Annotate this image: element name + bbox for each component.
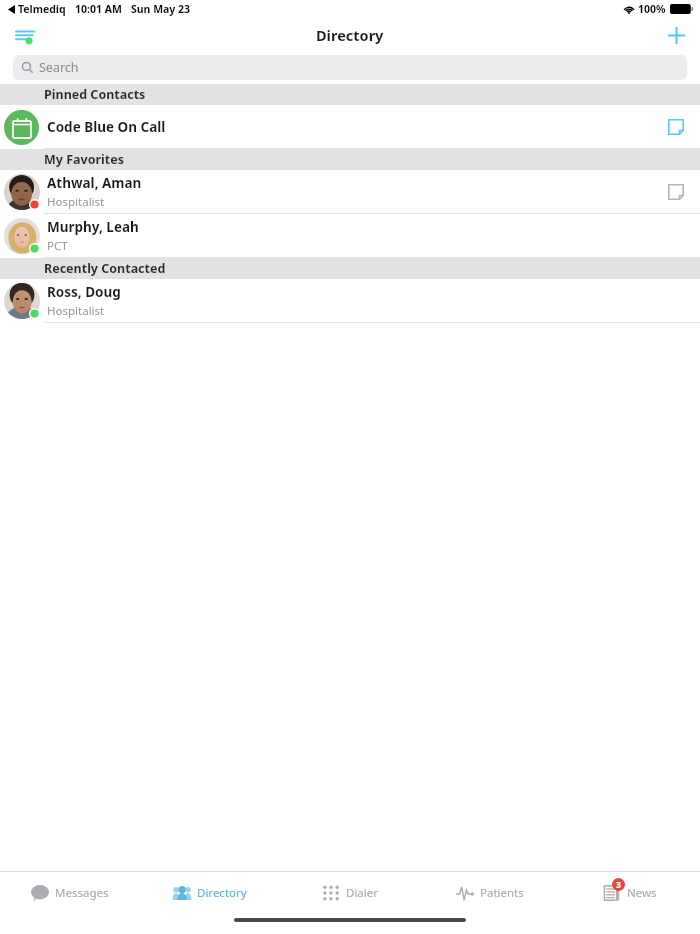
staticText: News xyxy=(627,885,657,901)
button[interactable]: Dialer xyxy=(280,872,420,914)
staticText: Murphy, Leah xyxy=(47,218,139,236)
staticText: 100% xyxy=(638,2,666,16)
button[interactable]: Add xyxy=(661,20,691,50)
staticText: Ross, Doug xyxy=(47,283,121,301)
button[interactable]: Directory xyxy=(140,872,280,914)
button[interactable]: Code Blue On Call xyxy=(0,105,700,149)
staticText: PCT xyxy=(47,238,68,254)
staticText: Recently Contacted xyxy=(44,260,166,277)
button[interactable]: Ross, Doug xyxy=(0,279,700,323)
staticText: Directory xyxy=(316,25,384,45)
staticText: Telmediq xyxy=(18,2,66,16)
staticText: Code Blue On Call xyxy=(47,118,166,136)
button[interactable]: Notes xyxy=(662,178,690,206)
staticText: Pinned Contacts xyxy=(44,86,146,103)
staticText: Hospitalist xyxy=(47,303,105,319)
button[interactable]: Murphy, Leah xyxy=(0,214,700,258)
button[interactable]: Menu xyxy=(10,20,40,50)
staticText: 3 xyxy=(616,879,621,891)
staticText: 10:01 AM xyxy=(75,2,122,16)
staticText: Directory xyxy=(197,885,247,901)
button[interactable]: Messages xyxy=(0,872,140,914)
button[interactable]: Athwal, Aman xyxy=(0,170,700,214)
button[interactable]: Notes xyxy=(662,113,690,141)
staticText: My Favorites xyxy=(44,151,124,168)
button[interactable]: 3 xyxy=(560,872,700,914)
staticText: Dialer xyxy=(346,885,379,901)
staticText: Sun May 23 xyxy=(131,2,191,16)
button[interactable]: Search xyxy=(13,55,687,80)
staticText: Patients xyxy=(480,885,524,901)
staticText: Athwal, Aman xyxy=(47,174,142,192)
button[interactable]: Patients xyxy=(420,872,560,914)
staticText: Hospitalist xyxy=(47,194,105,210)
staticText: Search xyxy=(39,59,79,76)
staticText: Messages xyxy=(55,885,109,901)
